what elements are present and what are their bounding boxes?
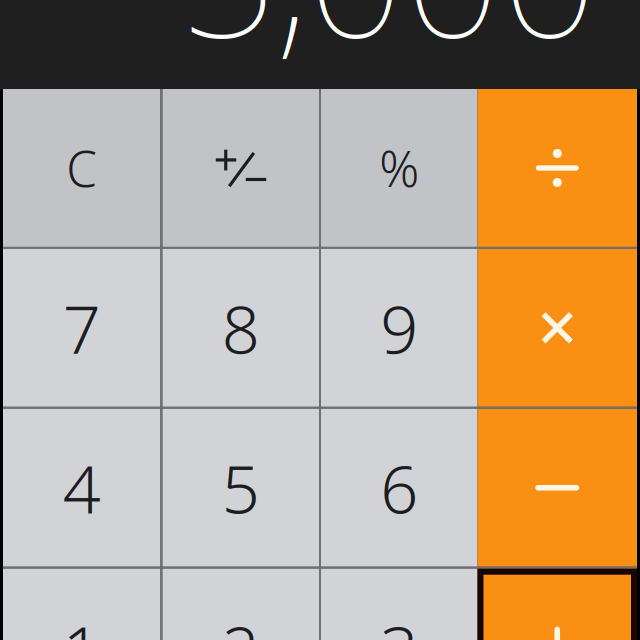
- button[interactable]: 6: [321, 409, 477, 567]
- button[interactable]: 8: [162, 249, 319, 407]
- staticText: 8: [222, 284, 260, 372]
- button[interactable]: Divide: [477, 89, 637, 247]
- button[interactable]: Plus minus: [162, 89, 319, 247]
- staticText: 6: [380, 443, 418, 532]
- staticText: 7: [63, 284, 101, 372]
- button[interactable]: Percent: [321, 89, 477, 247]
- button[interactable]: 3: [321, 569, 477, 640]
- staticText: 5: [222, 443, 260, 532]
- button[interactable]: Add: [477, 569, 637, 640]
- button[interactable]: Multiply: [477, 249, 637, 407]
- button[interactable]: 1: [3, 569, 160, 640]
- staticText: 9: [380, 284, 418, 372]
- staticText: %: [379, 135, 419, 201]
- staticText: 2: [222, 604, 260, 640]
- staticText: 4: [63, 443, 101, 532]
- staticText: 1: [63, 604, 101, 640]
- button[interactable]: Subtract: [477, 409, 637, 567]
- button[interactable]: 7: [3, 249, 160, 407]
- staticText: 5,000: [179, 0, 598, 84]
- button[interactable]: 5: [162, 409, 319, 567]
- button[interactable]: 9: [321, 249, 477, 407]
- staticText: 3: [380, 604, 418, 640]
- button[interactable]: Clear: [3, 89, 160, 247]
- staticText: C: [66, 135, 97, 201]
- button[interactable]: 2: [162, 569, 319, 640]
- button[interactable]: 4: [3, 409, 160, 567]
